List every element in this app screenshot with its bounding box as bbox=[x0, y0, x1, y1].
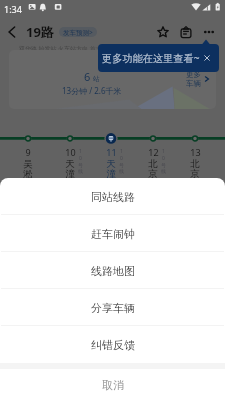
button[interactable]: 12 bbox=[142, 146, 164, 180]
button[interactable]: 发车预测> bbox=[59, 27, 97, 37]
staticText: 1 bbox=[162, 148, 165, 155]
staticText: 1 bbox=[120, 148, 123, 155]
staticText: 11 bbox=[106, 146, 117, 158]
staticText: 线 bbox=[119, 168, 124, 174]
staticText: 10 bbox=[65, 146, 76, 158]
button[interactable]: 取消 bbox=[0, 369, 225, 400]
staticText: 天 潼 bbox=[106, 158, 116, 180]
staticText: 1 bbox=[79, 148, 82, 155]
staticText: 双华路 始发站 火车站方向 首末班 05:30-22:30 bbox=[19, 45, 142, 53]
button[interactable]: Favourite bbox=[152, 21, 174, 43]
staticText: 发车预测> bbox=[63, 28, 93, 37]
staticText: 12 bbox=[148, 146, 159, 158]
button[interactable]: 纠错反馈 bbox=[0, 326, 225, 363]
button[interactable]: 9 bbox=[17, 146, 39, 180]
button[interactable]: Back bbox=[0, 20, 24, 44]
button[interactable]: 10 bbox=[59, 146, 81, 180]
staticText: 吴 淞 bbox=[23, 158, 33, 180]
staticText: 更多功能在这里查看~ bbox=[102, 51, 200, 65]
staticText: 0 bbox=[79, 155, 82, 162]
staticText: 19路 bbox=[26, 23, 54, 41]
button[interactable]: Close tip bbox=[204, 55, 210, 61]
staticText: 号 bbox=[119, 162, 124, 168]
staticText: 纠错反馈 bbox=[91, 338, 135, 352]
staticText: 线 bbox=[78, 168, 83, 174]
staticText: 1:34 bbox=[4, 3, 22, 15]
staticText: 号 bbox=[78, 162, 83, 168]
staticText: 6 bbox=[84, 69, 91, 84]
button[interactable]: 更多功能在这里查看~ bbox=[98, 44, 219, 72]
staticText: 号 bbox=[161, 162, 166, 168]
staticText: 13分钟 / 2.6千米 bbox=[62, 85, 122, 96]
staticText: 更多 bbox=[186, 70, 201, 79]
button[interactable]: 赶车闹钟 bbox=[0, 215, 225, 252]
staticText: 0 bbox=[162, 155, 165, 162]
staticText: 线 bbox=[161, 168, 166, 174]
button[interactable]: Bus card bbox=[175, 21, 197, 43]
staticText: 同站线路 bbox=[91, 190, 135, 204]
staticText: 赶车闹钟 bbox=[91, 227, 135, 241]
staticText: 北 京 bbox=[190, 158, 200, 180]
button[interactable]: 线路地图 bbox=[0, 252, 225, 289]
button[interactable]: 同站线路 bbox=[0, 178, 225, 215]
staticText: 站 bbox=[93, 75, 100, 83]
button[interactable]: 13 bbox=[184, 146, 206, 180]
button[interactable]: More options bbox=[198, 21, 220, 43]
staticText: 9 bbox=[25, 146, 31, 158]
staticText: 0 bbox=[120, 155, 123, 162]
staticText: 车辆 bbox=[186, 79, 201, 88]
staticText: 13 bbox=[190, 146, 201, 158]
button[interactable]: 分享车辆 bbox=[0, 289, 225, 326]
staticText: 北 京 bbox=[148, 158, 158, 180]
button[interactable]: 11 bbox=[100, 146, 122, 180]
staticText: 分享车辆 bbox=[91, 301, 135, 315]
staticText: 取消 bbox=[102, 378, 124, 392]
staticText: 线路地图 bbox=[91, 264, 135, 278]
staticText: 天 潼 bbox=[65, 158, 75, 180]
button[interactable]: 更多 bbox=[186, 70, 211, 88]
